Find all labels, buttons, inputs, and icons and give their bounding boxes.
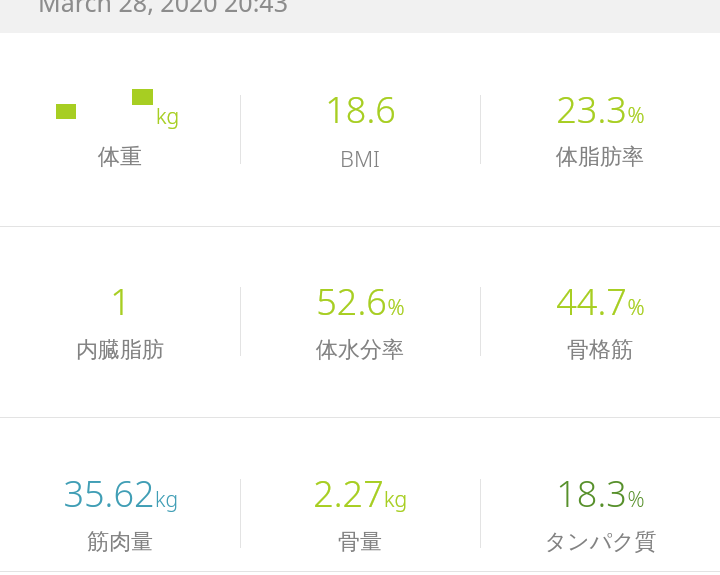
staticText: 体脂肪率 bbox=[556, 143, 644, 171]
button[interactable]: March 28, 2020 20:43 bbox=[0, 0, 720, 33]
staticText: 体水分率 bbox=[316, 336, 404, 364]
button[interactable]: 44.7 bbox=[480, 227, 720, 417]
staticText: 内臓脂肪 bbox=[76, 336, 164, 364]
staticText: kg bbox=[155, 485, 178, 514]
staticText: 体重 bbox=[98, 143, 142, 171]
staticText: % bbox=[627, 485, 645, 514]
button[interactable]: 1 bbox=[0, 227, 240, 417]
staticText: % bbox=[627, 293, 645, 322]
button[interactable]: 18.3 bbox=[480, 418, 720, 575]
staticText: % bbox=[627, 101, 645, 130]
other: Weight hidden bbox=[56, 85, 184, 121]
button[interactable]: 52.6 bbox=[240, 227, 480, 417]
staticText: 筋肉量 bbox=[87, 528, 153, 556]
staticText: 52.6 bbox=[316, 277, 387, 326]
staticText: BMI bbox=[340, 143, 380, 173]
staticText: kg bbox=[384, 485, 407, 514]
staticText: March 28, 2020 20:43 bbox=[38, 0, 288, 18]
staticText: 18.3 bbox=[556, 469, 627, 518]
button[interactable]: 2.27 bbox=[240, 418, 480, 575]
staticText: 骨量 bbox=[338, 528, 382, 556]
staticText: 35.62 bbox=[63, 469, 155, 518]
staticText: タンパク質 bbox=[544, 528, 657, 556]
staticText: kg bbox=[156, 102, 179, 131]
staticText: 23.3 bbox=[556, 85, 627, 134]
staticText: 18.6 bbox=[325, 85, 396, 134]
staticText: 44.7 bbox=[556, 277, 627, 326]
button[interactable]: 23.3 bbox=[480, 33, 720, 226]
button[interactable]: 35.62 bbox=[0, 418, 240, 575]
staticText: 1 bbox=[110, 277, 131, 326]
staticText: 2.27 bbox=[313, 469, 384, 518]
button[interactable]: Weight hidden bbox=[0, 33, 240, 226]
button[interactable]: 18.6 bbox=[240, 33, 480, 226]
staticText: % bbox=[387, 293, 405, 322]
staticText: 骨格筋 bbox=[567, 336, 633, 364]
